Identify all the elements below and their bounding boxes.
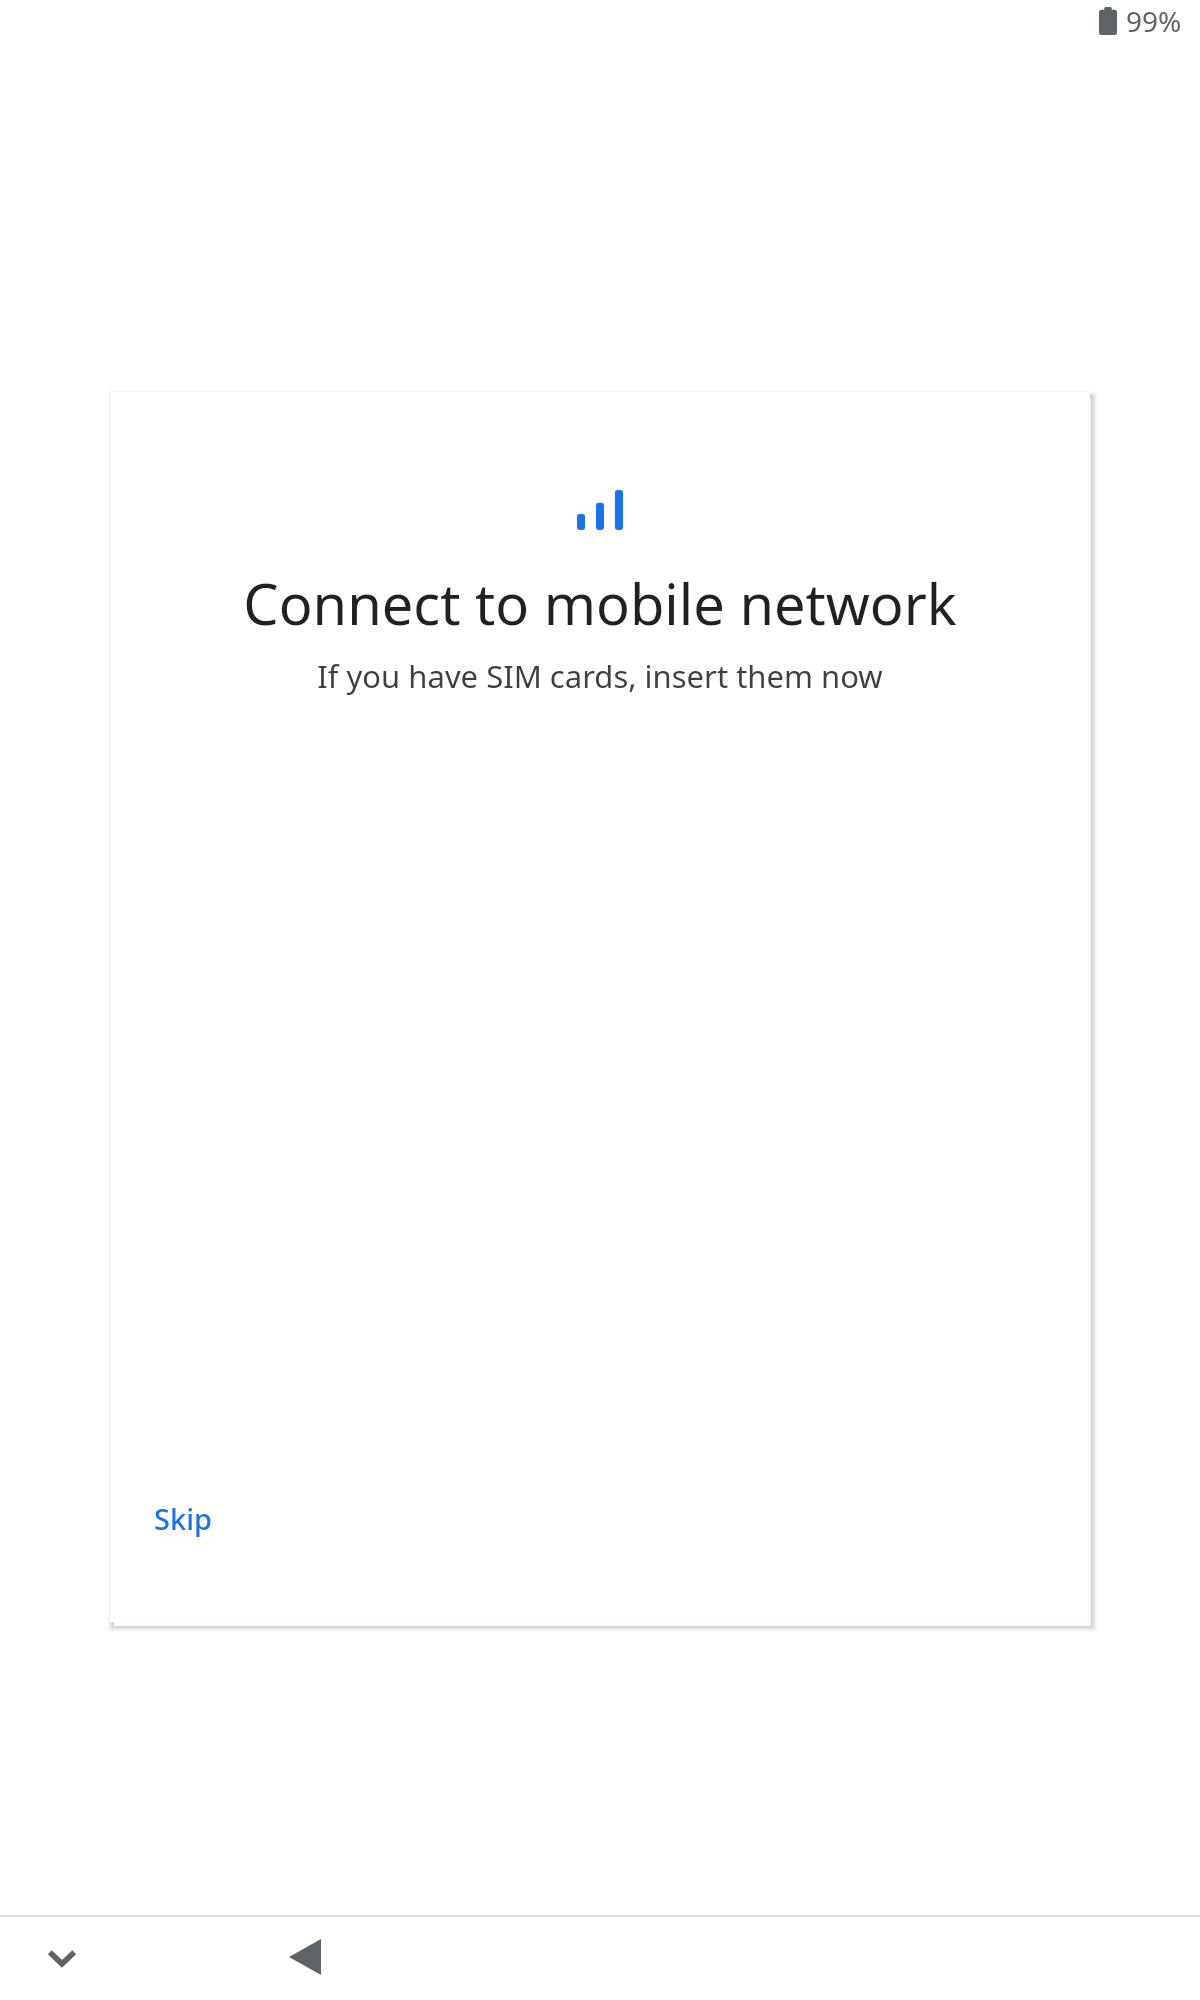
staticText: 99% bbox=[1126, 2, 1182, 40]
staticText: If you have SIM cards, insert them now bbox=[134, 655, 1066, 697]
button[interactable]: Skip bbox=[134, 1487, 232, 1550]
other: Mobile signal bbox=[577, 490, 623, 530]
button[interactable]: Back bbox=[265, 1917, 345, 1997]
button[interactable]: Hide keyboard bbox=[22, 1917, 102, 1997]
staticText: Connect to mobile network bbox=[134, 565, 1066, 641]
staticText: Skip bbox=[154, 1499, 212, 1538]
